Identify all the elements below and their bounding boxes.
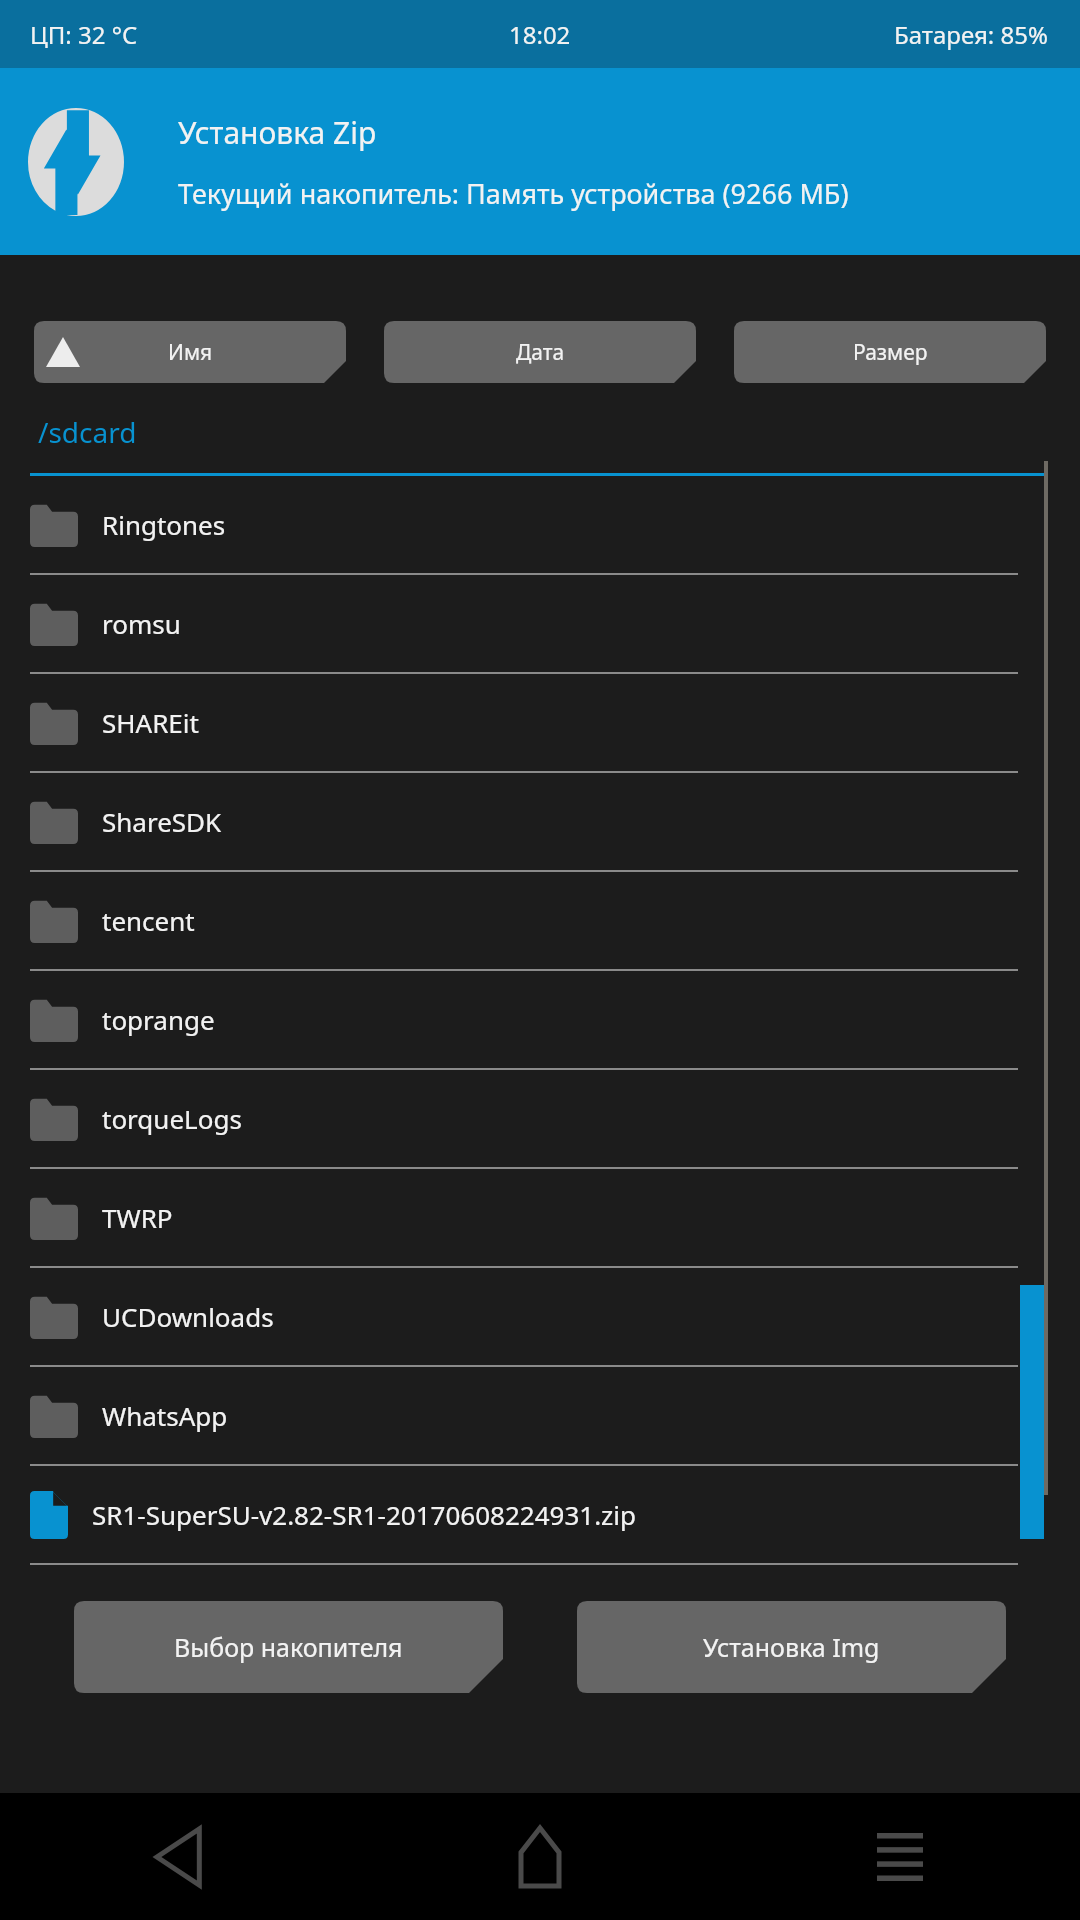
button[interactable]: toprange (0, 971, 1080, 1068)
staticText: toprange (102, 1002, 215, 1037)
button[interactable]: SHAREit (0, 674, 1080, 771)
staticText: Дата (516, 338, 565, 367)
staticText: Размер (853, 338, 928, 367)
staticText: Выбор накопителя (174, 1630, 403, 1664)
staticText: TWRP (102, 1200, 173, 1235)
staticText: Установка Img (703, 1630, 880, 1664)
staticText: Батарея: 85% (894, 18, 1048, 51)
staticText: tencent (102, 903, 195, 938)
staticText: SR1-SuperSU-v2.82-SR1-20170608224931.zip (92, 1497, 637, 1532)
staticText: romsu (102, 606, 181, 641)
staticText: /sdcard (38, 413, 137, 451)
button[interactable]: tencent (0, 872, 1080, 969)
staticText: Имя (168, 338, 213, 367)
button[interactable]: Размер (734, 321, 1046, 383)
button[interactable]: UCDownloads (0, 1268, 1080, 1365)
button[interactable]: SR1-SuperSU-v2.82-SR1-20170608224931.zip (0, 1466, 1080, 1563)
staticText: 18:02 (509, 18, 571, 51)
button[interactable]: Menu (720, 1793, 1080, 1920)
staticText: ЦП: 32 °C (30, 18, 138, 51)
staticText: Ringtones (102, 507, 226, 542)
button[interactable]: torqueLogs (0, 1070, 1080, 1167)
button[interactable]: Выбор накопителя (74, 1601, 503, 1693)
button[interactable]: ShareSDK (0, 773, 1080, 870)
staticText: UCDownloads (102, 1299, 274, 1334)
button[interactable]: Установка Img (577, 1601, 1006, 1693)
button[interactable]: Ringtones (0, 476, 1080, 573)
staticText: WhatsApp (102, 1398, 228, 1433)
button[interactable]: Дата (384, 321, 696, 383)
button[interactable]: WhatsApp (0, 1367, 1080, 1464)
button[interactable]: Имя (34, 321, 346, 383)
button[interactable]: Home (360, 1793, 720, 1920)
staticText: ShareSDK (102, 804, 222, 839)
staticText: SHAREit (102, 705, 199, 740)
staticText: Текущий накопитель: Память устройства (9… (178, 175, 849, 212)
button[interactable]: TWRP (0, 1169, 1080, 1266)
staticText: torqueLogs (102, 1101, 242, 1136)
button[interactable]: romsu (0, 575, 1080, 672)
button[interactable]: Back (0, 1793, 360, 1920)
staticText: Установка Zip (178, 112, 377, 153)
